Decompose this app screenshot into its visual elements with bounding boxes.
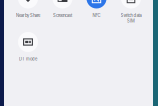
staticText: NFC — [92, 13, 100, 18]
button[interactable] — [86, 0, 106, 8]
button[interactable] — [18, 0, 38, 8]
staticText: Screencast — [53, 13, 72, 18]
staticText: SIM — [127, 19, 135, 24]
staticText: Nearby Share — [16, 13, 40, 18]
button[interactable] — [52, 0, 72, 8]
button[interactable] — [18, 32, 38, 52]
button[interactable] — [121, 0, 141, 8]
staticText: Switch data — [120, 13, 141, 18]
staticText: DT mode — [19, 56, 37, 61]
